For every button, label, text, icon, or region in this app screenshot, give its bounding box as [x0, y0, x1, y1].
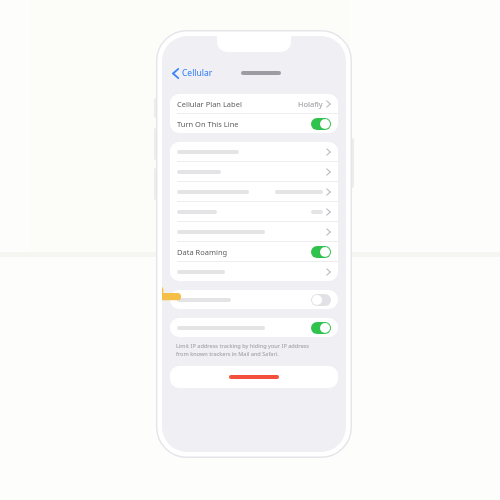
- button[interactable]: Toggle on: [311, 246, 331, 258]
- button[interactable]: Setting: [170, 202, 338, 221]
- button[interactable]: Toggle on: [311, 118, 331, 130]
- button[interactable]: Toggle off: [311, 294, 331, 306]
- button[interactable]: Delete eSIM: [170, 366, 338, 388]
- button[interactable]: Setting: [170, 182, 338, 201]
- button[interactable]: Setting: [170, 262, 338, 281]
- button[interactable]: Private relay toggle: [170, 318, 338, 337]
- staticText: Turn On This Line: [177, 119, 239, 129]
- button[interactable]: Setting toggle: [170, 290, 338, 309]
- button[interactable]: Data Roaming: [170, 242, 338, 261]
- button[interactable]: Cellular: [170, 64, 215, 82]
- button[interactable]: Setting: [170, 142, 338, 161]
- staticText: Cellular Plan Label: [177, 99, 242, 109]
- button[interactable]: Setting: [170, 162, 338, 181]
- staticText: Data Roaming: [177, 247, 228, 257]
- staticText: Limit IP address tracking by hiding your…: [176, 342, 309, 358]
- button[interactable]: Cellular Plan Label: [170, 94, 338, 113]
- button[interactable]: Toggle on: [311, 322, 331, 334]
- staticText: Holafly: [298, 99, 323, 109]
- button[interactable]: Setting: [170, 222, 338, 241]
- staticText: Cellular: [182, 67, 213, 79]
- other: Pointing hand: [162, 283, 182, 311]
- button[interactable]: Turn On This Line: [170, 114, 338, 133]
